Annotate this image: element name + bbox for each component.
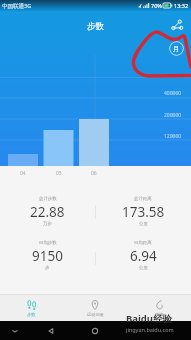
button[interactable]: 日均距离 — [95, 240, 191, 271]
staticText: 400000 — [164, 90, 182, 97]
staticText: 200000 — [164, 112, 182, 119]
button[interactable]: 日均步数 — [0, 240, 95, 271]
staticText: 06 — [91, 170, 97, 177]
staticText: 70% — [151, 2, 162, 9]
button[interactable]: 总计距离 — [95, 196, 191, 227]
staticText: 步 — [45, 265, 50, 271]
staticText: Baidu经验 — [126, 312, 173, 325]
staticText: 公里 — [139, 221, 148, 227]
staticText: 日均步数 — [39, 240, 57, 246]
staticText: 中国联通3G — [2, 2, 32, 10]
staticText: jingyan.baidu.com — [126, 326, 174, 333]
staticText: 173.58 — [122, 203, 165, 221]
button[interactable]: 月 — [169, 41, 184, 56]
staticText: 13:32 — [174, 2, 189, 9]
staticText: 04 — [20, 170, 26, 177]
button[interactable]: 睡眠 — [127, 295, 191, 321]
staticText: 22.88 — [30, 203, 65, 221]
staticText: 9150 — [32, 247, 63, 265]
button[interactable]: 步数 — [0, 295, 63, 321]
staticText: 6.94 — [130, 247, 157, 265]
staticText: 步数 — [87, 21, 104, 32]
button[interactable]: Share — [170, 18, 184, 32]
staticText: 120000 — [164, 133, 182, 140]
button[interactable]: 总计步数 — [0, 196, 95, 227]
staticText: 总计距离 — [134, 196, 152, 202]
staticText: 总计步数 — [39, 196, 57, 202]
button[interactable]: 运动记录 — [63, 295, 127, 321]
staticText: 日均距离 — [134, 240, 152, 246]
staticText: 月 — [173, 45, 180, 53]
staticText: 步数 — [27, 312, 36, 317]
staticText: 公里 — [139, 265, 148, 271]
staticText: 睡眠 — [155, 312, 164, 317]
staticText: 万步 — [43, 221, 52, 227]
staticText: 运动记录 — [87, 312, 104, 317]
staticText: 05 — [56, 170, 62, 177]
